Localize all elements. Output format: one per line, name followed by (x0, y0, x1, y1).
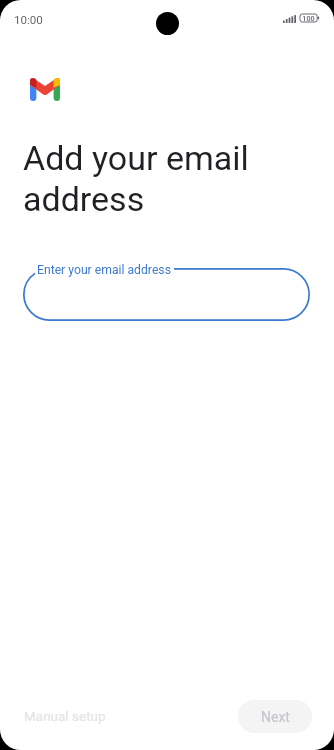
staticText: 100 (302, 14, 315, 22)
staticText: Add your email address (23, 138, 275, 220)
button[interactable]: Enter your email address (23, 268, 310, 321)
button[interactable]: Manual setup (15, 702, 115, 730)
button[interactable]: Next (238, 700, 312, 733)
staticText: Enter your email address (37, 263, 171, 277)
staticText: Next (261, 709, 290, 725)
staticText: 10:00 (14, 13, 43, 27)
staticText: Manual setup (24, 708, 106, 724)
